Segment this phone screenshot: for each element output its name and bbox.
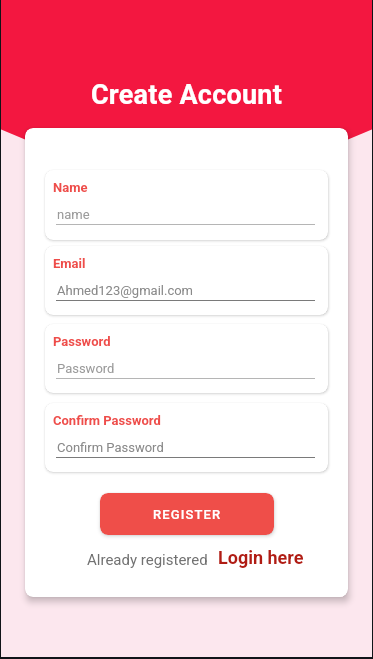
staticText: Ahmed123@gmail.com	[57, 283, 193, 298]
staticText: Confirm Password	[53, 413, 161, 428]
button[interactable]: Confirm Password	[45, 403, 328, 472]
button[interactable]: Email	[45, 246, 328, 315]
button[interactable]: Login here	[218, 547, 304, 568]
staticText: Password	[57, 361, 115, 376]
staticText: Email	[53, 256, 86, 271]
button[interactable]: Password	[45, 324, 328, 393]
staticText: Confirm Password	[57, 440, 164, 455]
button[interactable]: REGISTER	[100, 493, 274, 535]
staticText: name	[57, 207, 90, 222]
staticText: REGISTER	[153, 507, 222, 522]
staticText: Already registered	[87, 551, 208, 569]
staticText: Name	[53, 180, 88, 195]
staticText: Password	[53, 334, 111, 349]
staticText: Create Account	[0, 79, 373, 111]
button[interactable]: Name	[45, 170, 328, 240]
